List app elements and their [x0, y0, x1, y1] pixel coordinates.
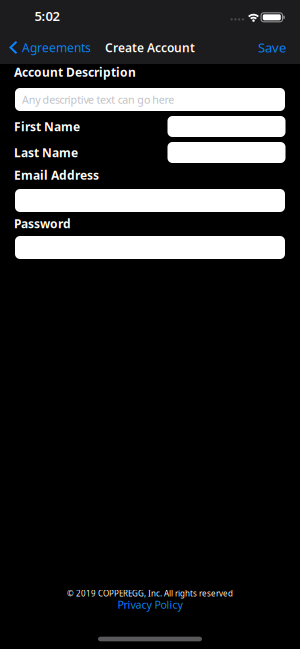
staticText: Password — [14, 215, 71, 231]
staticText: 5:02 — [34, 7, 59, 25]
staticText: Agreements — [22, 39, 91, 55]
button[interactable]: Agreements — [9, 39, 91, 55]
staticText: Account Description — [14, 64, 136, 80]
staticText: Last Name — [14, 144, 78, 160]
staticText: First Name — [14, 118, 80, 134]
staticText: Save — [258, 39, 286, 56]
staticText: Email Address — [14, 167, 99, 183]
staticText: Privacy Policy — [117, 597, 182, 612]
staticText: © 2019 COPPEREGG, Inc. All rights reserv… — [67, 588, 233, 599]
button[interactable]: Privacy Policy — [117, 597, 182, 612]
textField[interactable] — [22, 92, 285, 107]
staticText: Any descriptive text can go here — [22, 92, 174, 107]
textField[interactable] — [174, 146, 285, 159]
textField[interactable] — [174, 120, 285, 133]
button[interactable]: Save — [258, 39, 286, 56]
staticText: Create Account — [105, 39, 195, 55]
